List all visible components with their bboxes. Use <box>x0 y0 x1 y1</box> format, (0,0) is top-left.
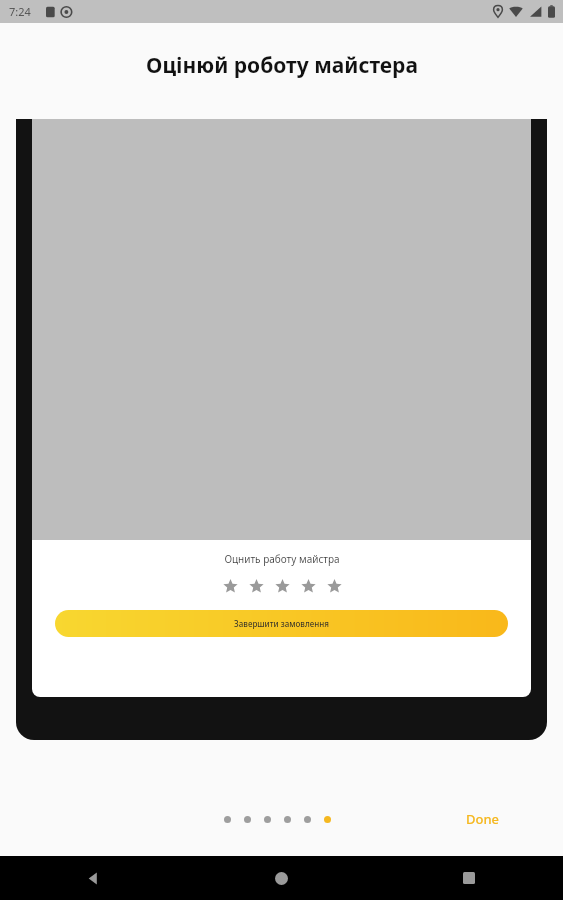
button[interactable]: Home <box>187 856 375 900</box>
button[interactable]: Rate 2 stars <box>248 578 264 594</box>
button[interactable]: Rate 1 stars <box>222 578 238 594</box>
staticText: Оцінюй роботу майстера <box>146 51 418 80</box>
button[interactable]: Recent apps <box>375 856 563 900</box>
staticText: Завершити замовлення <box>234 618 329 629</box>
button[interactable]: Done <box>466 810 500 828</box>
button[interactable]: Rate 3 stars <box>274 578 290 594</box>
button[interactable]: Rate 5 stars <box>326 578 342 594</box>
button[interactable]: Back <box>0 856 187 900</box>
staticText: Done <box>466 810 500 828</box>
button[interactable]: Rate 4 stars <box>300 578 316 594</box>
button[interactable]: Завершити замовлення <box>55 610 508 637</box>
staticText: 7:24 <box>9 4 31 19</box>
staticText: Оцнить работу майстра <box>224 552 340 566</box>
